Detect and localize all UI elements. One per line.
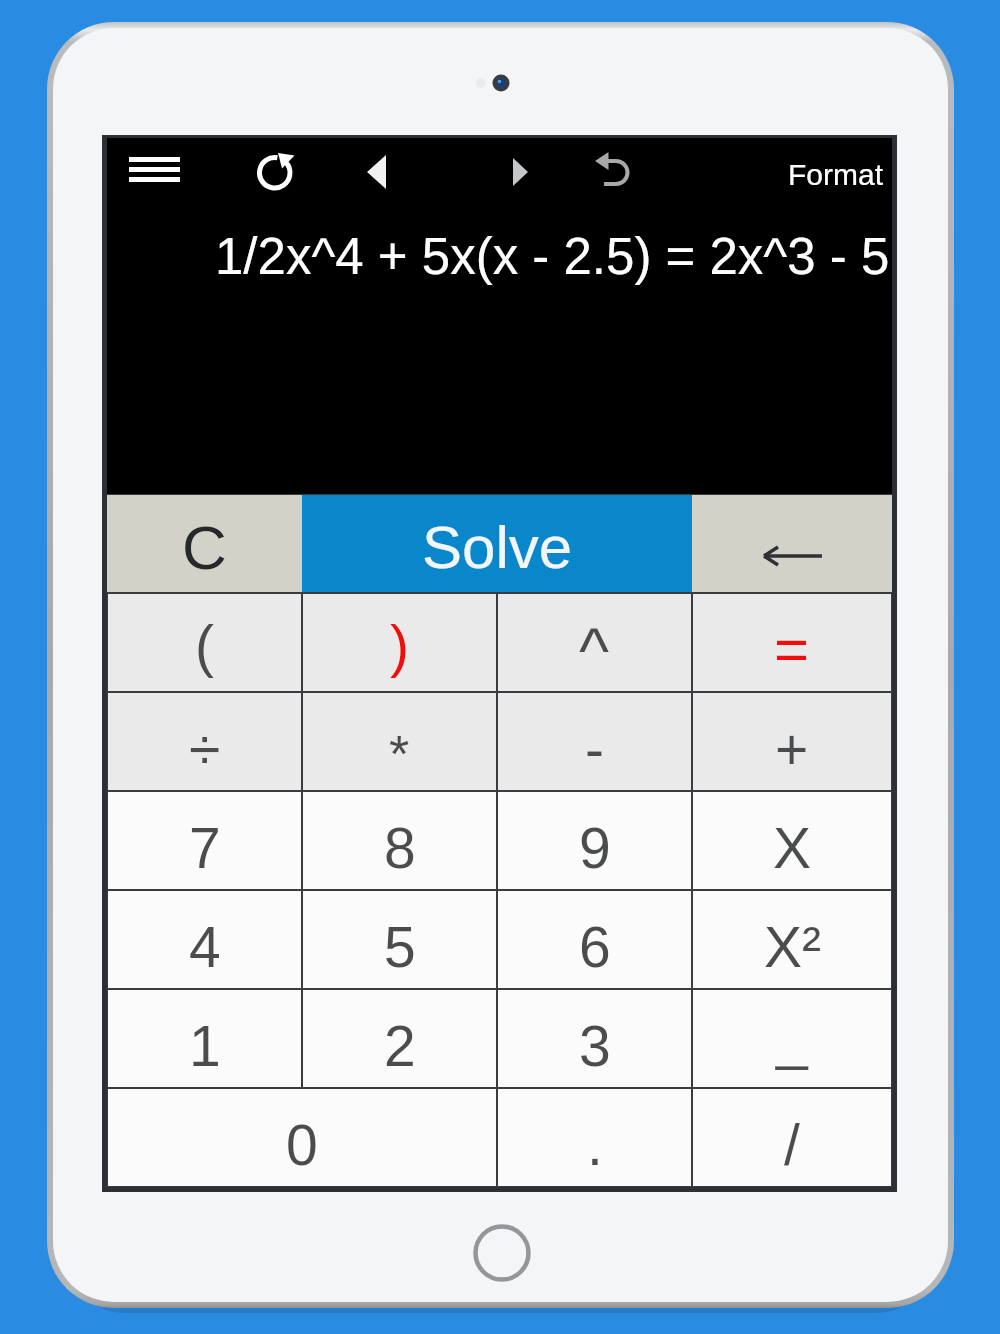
button[interactable]: _ (693, 990, 891, 1087)
staticText: ( (195, 614, 214, 678)
button[interactable]: ^ (498, 594, 691, 691)
staticText: ^ (579, 615, 610, 687)
staticText: ) (390, 614, 409, 678)
button[interactable]: 5 (303, 891, 496, 988)
button[interactable]: 1 (108, 990, 301, 1087)
staticText: 2 (384, 1014, 416, 1078)
button[interactable]: 9 (498, 792, 691, 889)
button[interactable]: / (693, 1089, 891, 1186)
staticText: 6 (579, 915, 611, 979)
staticText: / (784, 1113, 800, 1177)
staticText: = (774, 616, 810, 683)
button[interactable]: 0 (108, 1089, 496, 1186)
staticText: ÷ (189, 717, 221, 781)
staticText: 7 (189, 816, 221, 880)
button[interactable]: ) (303, 594, 496, 691)
button[interactable] (692, 495, 892, 592)
staticText: 1/2x^4 + 5x(x - 2.5) = 2x^3 - 5 (215, 228, 890, 285)
button[interactable]: * (303, 693, 496, 790)
button[interactable] (505, 150, 541, 194)
staticText: + (775, 717, 809, 781)
button[interactable] (590, 148, 636, 194)
staticText: X (773, 816, 812, 880)
staticText: 9 (579, 816, 611, 880)
button[interactable]: 6 (498, 891, 691, 988)
staticText: 8 (384, 816, 416, 880)
staticText: 4 (189, 915, 221, 979)
button[interactable]: Solve (302, 495, 692, 592)
staticText: Solve (422, 514, 573, 581)
button[interactable]: ( (108, 594, 301, 691)
button[interactable]: 3 (498, 990, 691, 1087)
button[interactable]: X (693, 792, 891, 889)
button[interactable]: + (693, 693, 891, 790)
button[interactable] (360, 150, 396, 194)
button[interactable]: C (107, 495, 302, 592)
staticText: 0 (286, 1113, 318, 1177)
button[interactable]: 4 (108, 891, 301, 988)
staticText: - (585, 717, 604, 781)
staticText: C (182, 513, 227, 582)
button[interactable]: = (693, 594, 891, 691)
button[interactable]: 2 (303, 990, 496, 1087)
button[interactable]: X² (693, 891, 891, 988)
button[interactable]: - (498, 693, 691, 790)
button[interactable]: 8 (303, 792, 496, 889)
button[interactable] (253, 148, 301, 196)
button[interactable]: Format (760, 157, 884, 193)
button[interactable]: . (498, 1089, 691, 1186)
button[interactable]: 7 (108, 792, 301, 889)
staticText: 5 (384, 915, 416, 979)
staticText: * (389, 725, 410, 783)
button[interactable] (125, 148, 185, 186)
button[interactable] (470, 1221, 534, 1285)
staticText: 1 (189, 1014, 221, 1078)
staticText: X² (764, 915, 821, 979)
staticText: Format (788, 158, 884, 192)
staticText: . (587, 1113, 603, 1177)
staticText: _ (776, 1007, 808, 1071)
button[interactable]: ÷ (108, 693, 301, 790)
staticText: 3 (579, 1014, 611, 1078)
